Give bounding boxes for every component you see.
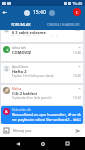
button[interactable]: ONEMLI HABERLER bbox=[42, 18, 85, 30]
button[interactable]: Recents bbox=[60, 137, 74, 150]
button[interactable]: Language bbox=[73, 8, 81, 16]
staticText: Bonusfixed-er-qoz kuzandim, dhonik bbox=[12, 112, 81, 117]
staticText: 13:34 bbox=[73, 96, 81, 100]
staticText: ne paylasim sitesi Bonusfixed2 - ooml bbox=[12, 117, 81, 122]
staticText: 15:40 bbox=[33, 9, 46, 16]
button[interactable]: Back bbox=[11, 137, 25, 150]
button[interactable]: sifnaz kah bbox=[1, 44, 83, 61]
button[interactable]: Melisa bbox=[1, 85, 83, 105]
staticText: 13:48 bbox=[73, 74, 81, 78]
staticText: Cilt 2 bahleri bbox=[12, 91, 38, 96]
button[interactable]: Back bbox=[0, 8, 9, 17]
button[interactable]: Send bbox=[74, 127, 82, 135]
staticText: Melisa bbox=[12, 87, 22, 91]
staticText: 15:40 bbox=[72, 1, 83, 6]
staticText: A bbox=[5, 109, 8, 114]
staticText: 13:48 bbox=[73, 51, 81, 55]
staticText: Toplamda 6'dan fazla puan alacak bbox=[12, 35, 58, 36]
staticText: 0:47 bbox=[75, 30, 81, 32]
staticText: Toplamda 4'ten fazla puan ile bbox=[12, 96, 52, 100]
button[interactable]: A bbox=[1, 106, 83, 124]
button[interactable]: Attach image bbox=[3, 127, 10, 134]
staticText: 13:34 bbox=[73, 118, 81, 122]
staticText: Toplam 3'ten fazla puan alacak bbox=[12, 74, 54, 78]
staticText: 6 3 sabit eslesme bbox=[12, 30, 46, 35]
staticText: Aysu Demir bbox=[12, 65, 29, 69]
button[interactable]: YORUMLAR bbox=[0, 18, 42, 30]
staticText: COMOVIZ bbox=[12, 50, 32, 55]
button[interactable]: Aysu Demir bbox=[1, 63, 83, 83]
staticText: Mukaddes Ak bbox=[12, 108, 31, 112]
button[interactable]: Home bbox=[36, 137, 50, 150]
staticText: Hafta 2 bbox=[12, 69, 27, 74]
staticText: sifnaz kah bbox=[12, 46, 27, 50]
staticText: Mesaj yaz bbox=[13, 128, 32, 133]
staticText: ONEMLI HABERLER bbox=[47, 22, 80, 27]
staticText: YORUMLAR bbox=[11, 22, 31, 27]
